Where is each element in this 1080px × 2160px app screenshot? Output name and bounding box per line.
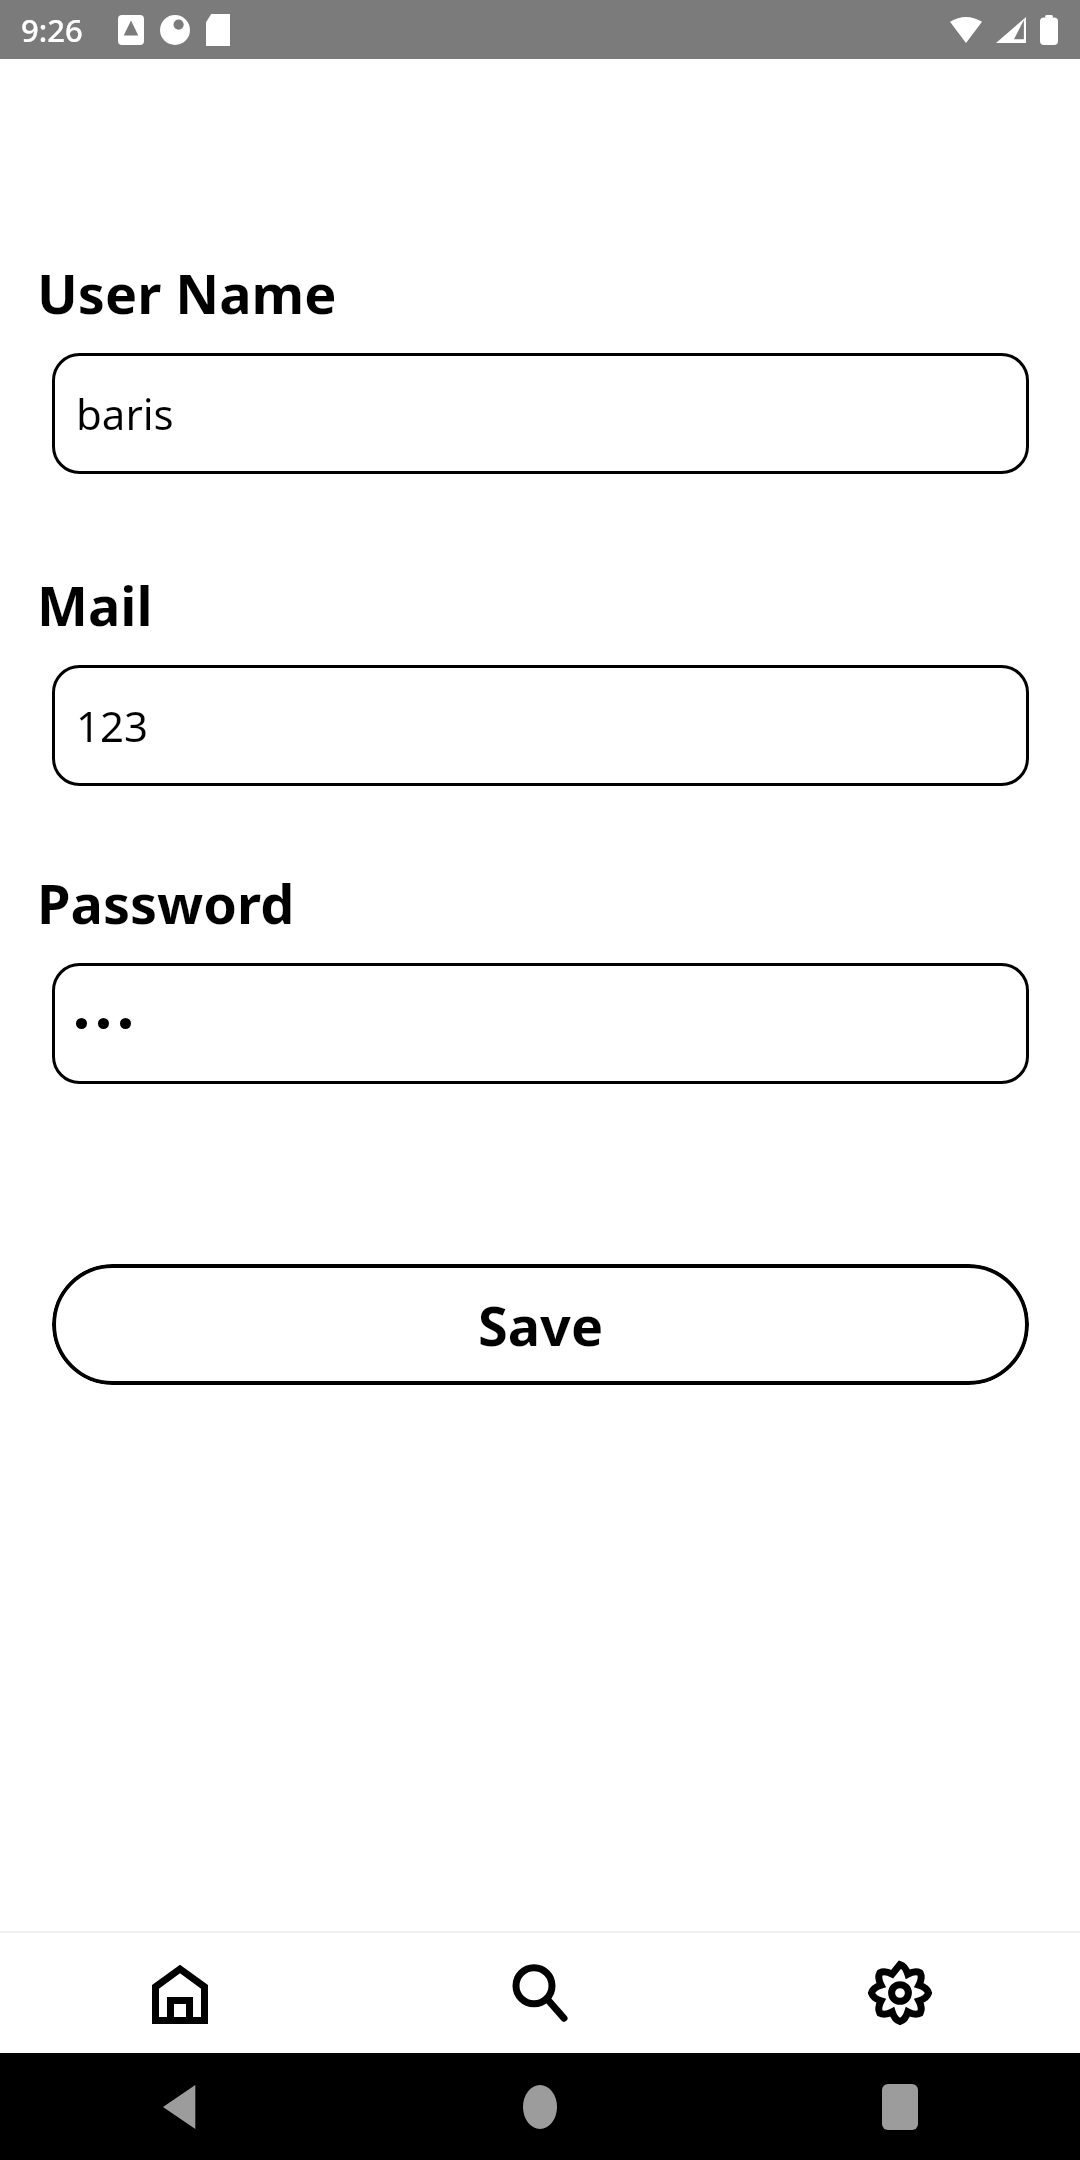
button[interactable]: Settings — [720, 1933, 1080, 2053]
button[interactable]: Back — [0, 2053, 360, 2160]
button[interactable]: Home — [0, 1933, 360, 2053]
button[interactable]: Recents — [720, 2053, 1080, 2160]
staticText: 123 — [76, 697, 149, 754]
staticText: baris — [76, 385, 174, 442]
staticText: 9:26 — [21, 9, 83, 51]
staticText: Password — [37, 866, 295, 940]
staticText: Mail — [37, 568, 153, 642]
button[interactable]: baris — [52, 353, 1029, 474]
button[interactable]: Save — [52, 1264, 1029, 1385]
button[interactable]: Search — [360, 1933, 720, 2053]
button[interactable]: Home — [360, 2053, 720, 2160]
button[interactable] — [52, 963, 1029, 1084]
staticText: Save — [478, 1288, 604, 1362]
staticText: User Name — [37, 256, 337, 330]
button[interactable]: 123 — [52, 665, 1029, 786]
